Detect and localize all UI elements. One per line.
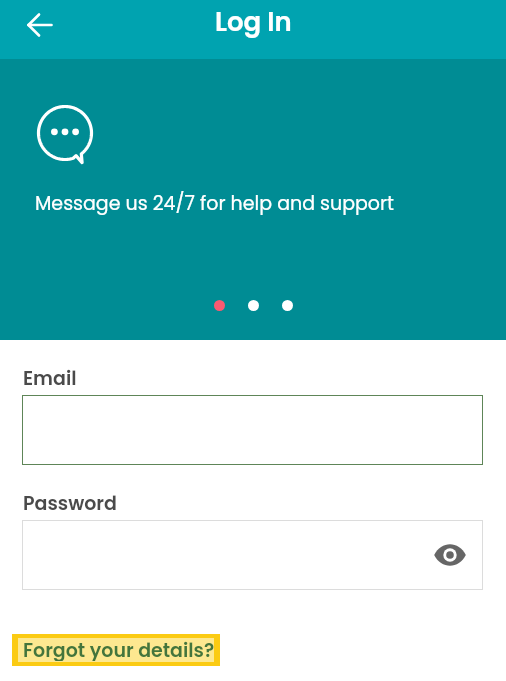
staticText: Forgot your details? <box>23 637 215 661</box>
button[interactable]: Forgot your details? <box>12 634 220 666</box>
staticText: Message us 24/7 for help and support <box>35 190 394 217</box>
button[interactable]: Show password <box>430 535 470 575</box>
staticText: Log In <box>215 4 292 40</box>
staticText: Email <box>23 365 77 392</box>
button[interactable]: Page 3 <box>282 300 293 311</box>
button[interactable]: Page 1 <box>214 300 225 311</box>
button[interactable]: Password input <box>22 520 483 590</box>
button[interactable]: Email input <box>22 395 483 465</box>
staticText: Password <box>23 490 117 517</box>
button[interactable]: Page 2 <box>248 300 259 311</box>
button[interactable]: Back <box>16 1 64 49</box>
